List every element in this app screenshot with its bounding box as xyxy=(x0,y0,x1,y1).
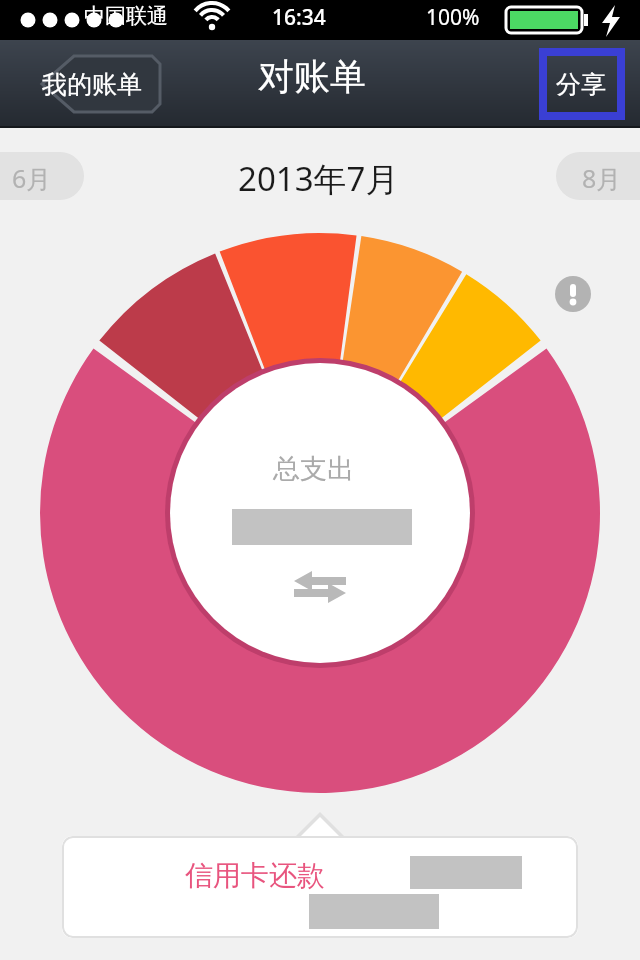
staticText: 总支出 xyxy=(273,452,354,486)
button[interactable]: 我的账单 xyxy=(14,52,164,116)
staticText: 对账单 xyxy=(258,54,366,99)
button[interactable]: 6月 xyxy=(0,152,84,200)
button[interactable]: Switch between income and expense xyxy=(290,570,350,604)
staticText: 16:34 xyxy=(272,3,326,32)
staticText: 信用卡还款 xyxy=(185,858,325,893)
button[interactable]: 分享 xyxy=(543,52,621,116)
staticText: 100% xyxy=(426,3,480,32)
button[interactable]: 信用卡还款 xyxy=(62,836,578,938)
staticText: 分享 xyxy=(556,69,606,100)
button[interactable]: Warning xyxy=(555,276,591,312)
staticText: 2013年7月 xyxy=(238,156,399,201)
button[interactable]: 8月 xyxy=(556,152,640,200)
staticText: 6月 xyxy=(12,161,52,195)
staticText: 8月 xyxy=(582,161,622,195)
staticText: 我的账单 xyxy=(42,69,142,100)
staticText: 中国联通 xyxy=(84,3,168,29)
